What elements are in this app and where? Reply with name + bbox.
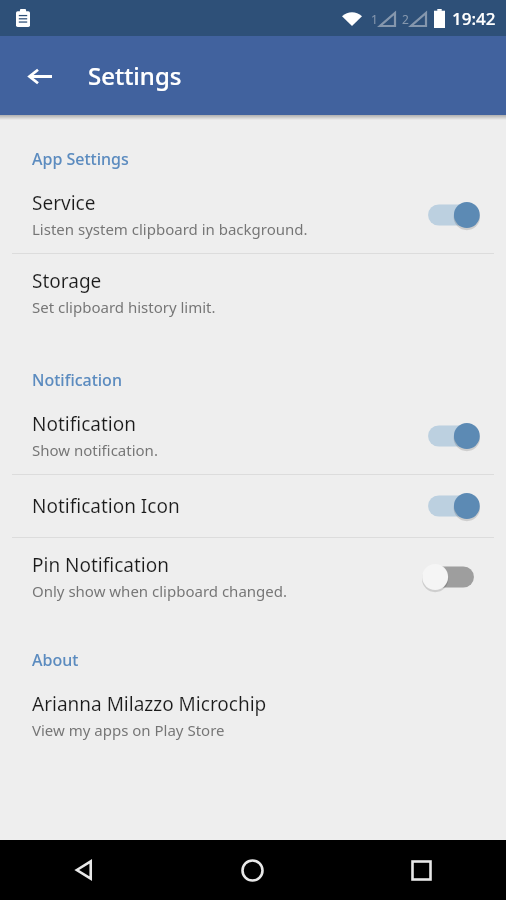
staticText: Notification Icon bbox=[32, 493, 180, 519]
staticText: Notification bbox=[32, 369, 122, 391]
staticText: 19:42 bbox=[452, 7, 496, 30]
button[interactable]: Back bbox=[14, 50, 66, 102]
button[interactable]: Arianna Milazzo Microchip bbox=[0, 677, 506, 754]
button[interactable]: On bbox=[420, 419, 482, 453]
button[interactable]: Off bbox=[420, 560, 482, 594]
button[interactable]: On bbox=[420, 198, 482, 232]
staticText: View my apps on Play Store bbox=[32, 720, 225, 740]
button[interactable]: On bbox=[420, 489, 482, 523]
button[interactable]: Notification bbox=[0, 397, 506, 474]
staticText: Notification bbox=[32, 411, 136, 437]
staticText: 1 bbox=[371, 11, 378, 27]
staticText: App Settings bbox=[32, 148, 129, 170]
button[interactable]: Storage bbox=[0, 254, 506, 331]
staticText: Set clipboard history limit. bbox=[32, 297, 216, 317]
staticText: Only show when clipboard changed. bbox=[32, 581, 288, 601]
button[interactable]: Home bbox=[168, 840, 337, 900]
button[interactable]: Recents bbox=[337, 840, 506, 900]
staticText: 2 bbox=[402, 11, 409, 27]
staticText: About bbox=[32, 649, 79, 671]
button[interactable]: Pin Notification bbox=[0, 538, 506, 615]
staticText: Show notification. bbox=[32, 440, 158, 460]
button[interactable]: Notification Icon bbox=[0, 475, 506, 537]
staticText: Pin Notification bbox=[32, 552, 169, 578]
staticText: Arianna Milazzo Microchip bbox=[32, 691, 267, 717]
staticText: Settings bbox=[88, 59, 182, 92]
button[interactable]: Service bbox=[0, 176, 506, 253]
staticText: Listen system clipboard in background. bbox=[32, 219, 308, 239]
staticText: Storage bbox=[32, 268, 102, 294]
button[interactable]: Back bbox=[0, 840, 168, 900]
staticText: Service bbox=[32, 190, 96, 216]
